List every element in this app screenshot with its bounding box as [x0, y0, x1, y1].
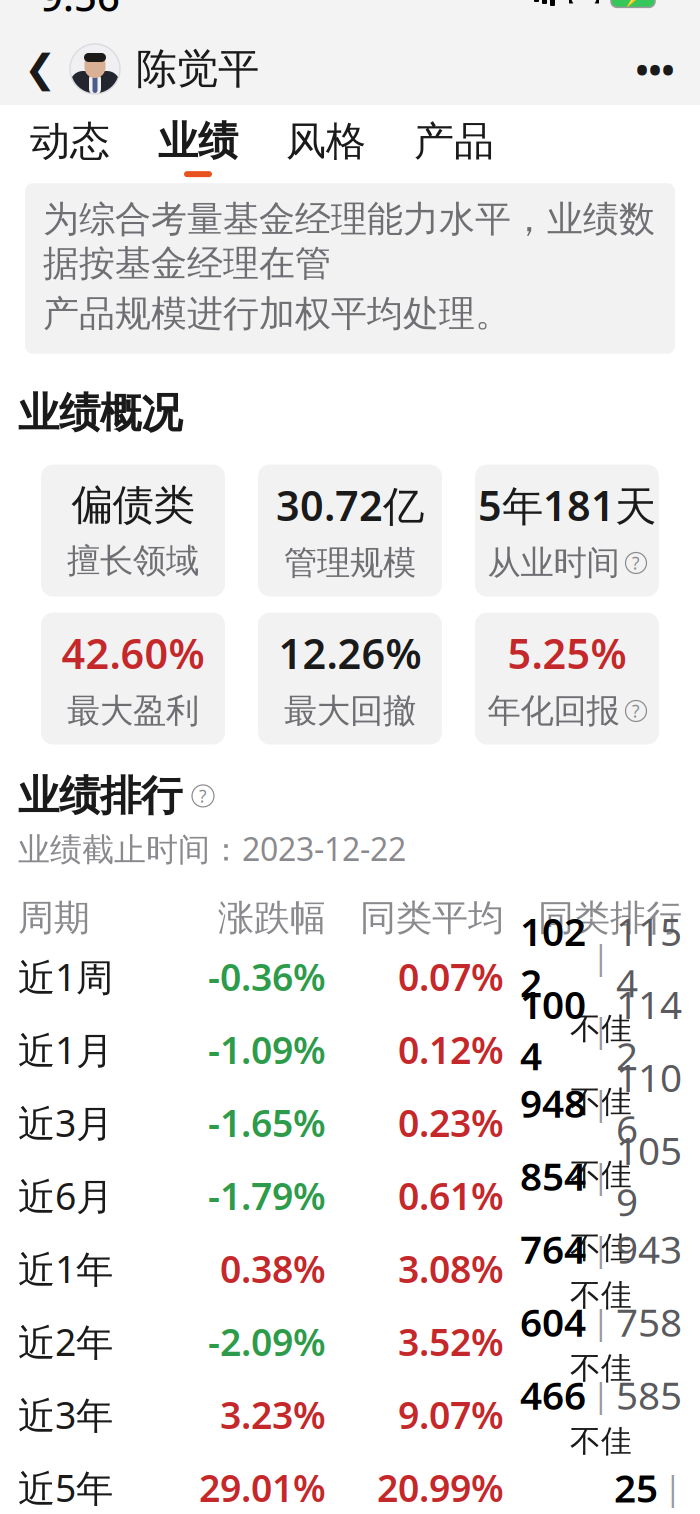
- staticText: 1142: [616, 978, 682, 1081]
- staticText: 0.23%: [398, 1098, 504, 1147]
- button[interactable]: 风格: [270, 109, 382, 181]
- staticText: 擅长领域: [67, 540, 199, 581]
- staticText: ?: [632, 699, 640, 722]
- staticText: 不佳: [570, 1422, 632, 1460]
- staticText: 不佳: [570, 1010, 632, 1048]
- staticText: 业绩: [158, 117, 238, 166]
- button[interactable]: 动态: [14, 109, 126, 181]
- staticText: 业绩排行: [18, 770, 182, 821]
- staticText: 1154: [616, 905, 682, 1008]
- staticText: 30.72亿: [276, 478, 424, 532]
- staticText: 产品: [414, 117, 494, 166]
- staticText: 0.07%: [398, 952, 504, 1001]
- staticText: 近1年: [18, 1244, 113, 1293]
- staticText: 周期: [18, 896, 90, 940]
- staticText: 不佳: [570, 1083, 632, 1121]
- staticText: -2.09%: [208, 1317, 326, 1366]
- staticText: |: [592, 1081, 610, 1124]
- staticText: 5.25%: [507, 626, 626, 680]
- staticText: 764: [520, 1223, 586, 1274]
- staticText: |: [592, 1008, 610, 1051]
- staticText: 3.08%: [398, 1244, 504, 1293]
- staticText: |: [592, 1227, 610, 1270]
- button[interactable]: 更多: [628, 42, 682, 96]
- staticText: 1059: [616, 1124, 682, 1227]
- staticText: •••: [635, 46, 674, 92]
- staticText: 业绩概况: [18, 388, 182, 439]
- staticText: -0.36%: [208, 952, 326, 1001]
- staticText: 最大盈利: [67, 690, 199, 731]
- staticText: 948: [520, 1077, 586, 1128]
- staticText: 最大回撤: [284, 690, 416, 731]
- button[interactable]: 业绩排行说明: [192, 785, 214, 807]
- staticText: 604: [520, 1296, 586, 1347]
- staticText: 5年181天: [478, 478, 656, 532]
- staticText: 9:56: [40, 0, 120, 22]
- staticText: 近3月: [18, 1098, 113, 1147]
- staticText: 3.23%: [220, 1390, 326, 1439]
- staticText: 近1周: [18, 952, 113, 1001]
- staticText: 管理规模: [284, 542, 416, 583]
- staticText: ?: [199, 784, 207, 807]
- staticText: 为综合考量基金经理能力水平，业绩数据按基金经理在管: [43, 197, 655, 285]
- staticText: 从业时间: [487, 542, 619, 583]
- staticText: 近3年: [18, 1390, 113, 1439]
- staticText: 854: [520, 1150, 586, 1201]
- staticText: 产品规模进行加权平均处理。: [43, 291, 511, 336]
- staticText: 不佳: [570, 1349, 632, 1387]
- staticText: 585: [616, 1369, 682, 1420]
- staticText: 同类平均: [360, 896, 504, 940]
- staticText: -1.09%: [208, 1025, 326, 1074]
- staticText: 9.07%: [398, 1390, 504, 1439]
- staticText: 近5年: [18, 1463, 113, 1512]
- staticText: 陈觉平: [136, 44, 259, 94]
- staticText: 涨跌幅: [218, 896, 326, 940]
- staticText: 1022: [520, 905, 586, 1008]
- staticText: 1106: [616, 1051, 682, 1154]
- staticText: 不佳: [570, 1156, 632, 1194]
- staticText: 不佳: [570, 1229, 632, 1267]
- button[interactable]: 陈觉平: [70, 44, 259, 94]
- staticText: ❮: [24, 47, 56, 91]
- staticText: 业绩截止时间：2023-12-22: [18, 827, 406, 870]
- staticText: 1004: [520, 978, 586, 1081]
- staticText: |: [592, 935, 610, 978]
- staticText: |: [664, 1466, 682, 1509]
- staticText: ⚡: [620, 0, 645, 7]
- staticText: 不佳: [570, 1276, 632, 1314]
- staticText: 偏债类: [71, 480, 194, 530]
- staticText: 42.60%: [61, 626, 204, 680]
- staticText: 29.01%: [199, 1463, 326, 1512]
- staticText: 年化回报: [487, 690, 619, 731]
- staticText: 758: [616, 1296, 682, 1347]
- staticText: -1.65%: [208, 1098, 326, 1147]
- staticText: 近6月: [18, 1171, 113, 1220]
- staticText: 同类排行: [538, 896, 682, 940]
- staticText: 风格: [286, 117, 366, 166]
- button[interactable]: 业绩: [142, 109, 254, 181]
- staticText: 0.61%: [398, 1171, 504, 1220]
- staticText: |: [592, 1300, 610, 1343]
- staticText: 20.99%: [377, 1463, 504, 1512]
- staticText: 12.26%: [278, 626, 421, 680]
- staticText: 25: [614, 1462, 658, 1513]
- button[interactable]: 产品: [398, 109, 510, 181]
- staticText: |: [592, 1154, 610, 1197]
- staticText: 466: [520, 1369, 586, 1420]
- staticText: 943: [616, 1223, 682, 1274]
- staticText: |: [592, 1373, 610, 1416]
- staticText: 动态: [30, 117, 110, 166]
- staticText: 0.12%: [398, 1025, 504, 1074]
- staticText: 近1月: [18, 1025, 113, 1074]
- staticText: 0.38%: [220, 1244, 326, 1293]
- staticText: 3.52%: [398, 1317, 504, 1366]
- staticText: -1.79%: [208, 1171, 326, 1220]
- staticText: ?: [632, 551, 640, 574]
- button[interactable]: 返回: [18, 42, 62, 96]
- staticText: 近2年: [18, 1317, 113, 1366]
